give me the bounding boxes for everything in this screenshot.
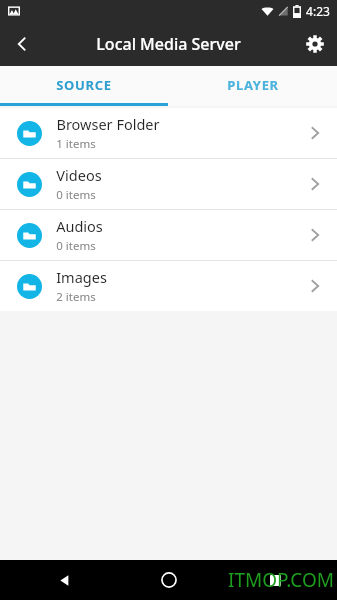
staticText: Local Media Server — [96, 33, 241, 55]
button[interactable]: Home — [154, 565, 184, 595]
staticText: 0 items — [56, 238, 96, 254]
staticText: Videos — [56, 165, 102, 185]
staticText: Browser Folder — [56, 114, 160, 134]
staticText: 2 items — [56, 289, 96, 305]
button[interactable]: Back — [50, 565, 80, 595]
staticText: Audios — [56, 216, 103, 236]
staticText: ITMOP.COM — [228, 567, 334, 593]
staticText: SOURCE — [56, 76, 112, 94]
button[interactable]: Back — [0, 22, 44, 66]
button[interactable]: Settings — [293, 22, 337, 66]
button[interactable]: SOURCE — [0, 66, 168, 103]
staticText: 0 items — [56, 187, 96, 203]
button[interactable]: PLAYER — [168, 66, 337, 103]
staticText: 1 items — [56, 136, 96, 152]
staticText: 4:23 — [306, 3, 330, 19]
staticText: Images — [56, 267, 107, 287]
button[interactable]: Browser Folder — [0, 108, 337, 158]
staticText: PLAYER — [227, 76, 279, 94]
button[interactable]: Videos — [0, 159, 337, 209]
button[interactable]: Images — [0, 261, 337, 311]
button[interactable]: Recent apps — [260, 565, 290, 595]
button[interactable]: Audios — [0, 210, 337, 260]
